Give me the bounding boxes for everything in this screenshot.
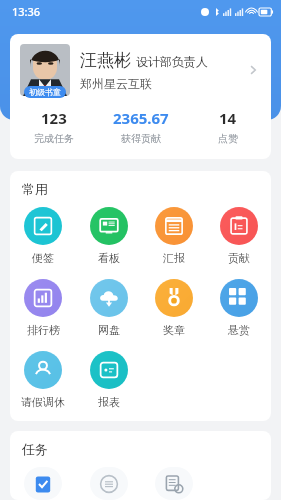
staticText: 贡献 <box>228 251 250 265</box>
button[interactable]: 123 <box>10 108 97 145</box>
button[interactable]: 请假调休 <box>10 351 76 409</box>
staticText: 13:36 <box>12 4 41 19</box>
staticText: 奖章 <box>163 323 185 337</box>
button[interactable]: Task 1 <box>76 467 141 500</box>
button[interactable]: 14 <box>184 108 271 145</box>
button[interactable]: 悬赏 <box>206 279 271 337</box>
staticText: 完成任务 <box>34 132 74 145</box>
staticText: 获得贡献 <box>121 132 161 145</box>
other: Open profile <box>245 62 261 78</box>
staticText: 网盘 <box>98 323 120 337</box>
staticText: 常用 <box>22 181 48 197</box>
other: Task 1 <box>90 467 128 500</box>
staticText: 初级书童 <box>29 87 61 97</box>
button[interactable]: 奖章 <box>141 279 206 337</box>
button[interactable]: 排行榜 <box>10 279 76 337</box>
staticText: 悬赏 <box>228 323 250 337</box>
staticText: 排行榜 <box>27 323 60 337</box>
staticText: 设计部负责人 <box>136 54 208 69</box>
staticText: 郑州星云互联 <box>80 76 152 91</box>
staticText: 任务 <box>22 441 48 457</box>
staticText: 请假调休 <box>21 395 65 409</box>
staticText: 便签 <box>32 251 54 265</box>
other: Task 2 <box>155 467 193 500</box>
button[interactable]: 初级书童 <box>10 34 271 159</box>
button[interactable]: Task 0 <box>10 467 76 500</box>
button[interactable]: Task 2 <box>141 467 206 500</box>
button[interactable]: 贡献 <box>206 207 271 265</box>
staticText: 123 <box>41 108 67 128</box>
button[interactable]: 2365.67 <box>97 108 184 145</box>
staticText: 汇报 <box>163 251 185 265</box>
staticText: 点赞 <box>218 132 238 145</box>
button[interactable]: 报表 <box>76 351 141 409</box>
staticText: 看板 <box>98 251 120 265</box>
button[interactable]: 便签 <box>10 207 76 265</box>
button[interactable]: 网盘 <box>76 279 141 337</box>
staticText: 报表 <box>98 395 120 409</box>
staticText: 14 <box>219 108 237 128</box>
staticText: 2365.67 <box>113 108 169 128</box>
staticText: 汪燕彬 <box>80 50 131 71</box>
other: Task 0 <box>24 467 62 500</box>
button[interactable]: 看板 <box>76 207 141 265</box>
button[interactable]: 汇报 <box>141 207 206 265</box>
